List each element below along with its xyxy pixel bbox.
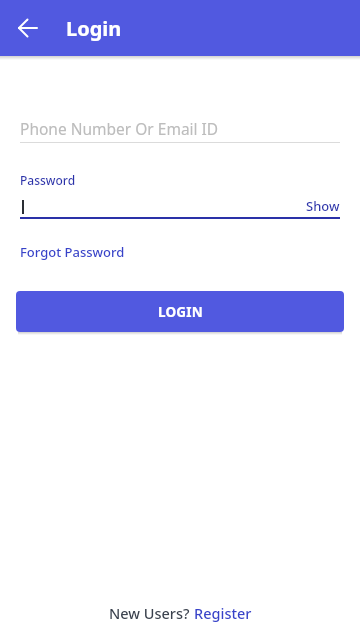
- staticText: Register: [194, 603, 252, 623]
- staticText: New Users?: [109, 603, 194, 623]
- staticText: Phone Number Or Email ID: [20, 118, 219, 139]
- staticText: Forgot Password: [20, 243, 125, 261]
- staticText: Show: [306, 197, 340, 214]
- staticText: Login: [66, 15, 122, 42]
- staticText: LOGIN: [158, 303, 203, 321]
- staticText: Password: [20, 172, 76, 188]
- button[interactable]: LOGIN: [16, 291, 344, 332]
- button[interactable]: [0, 0, 56, 56]
- button[interactable]: Forgot Password: [20, 243, 125, 261]
- button[interactable]: Register: [194, 603, 252, 623]
- button[interactable]: Show: [306, 197, 340, 214]
